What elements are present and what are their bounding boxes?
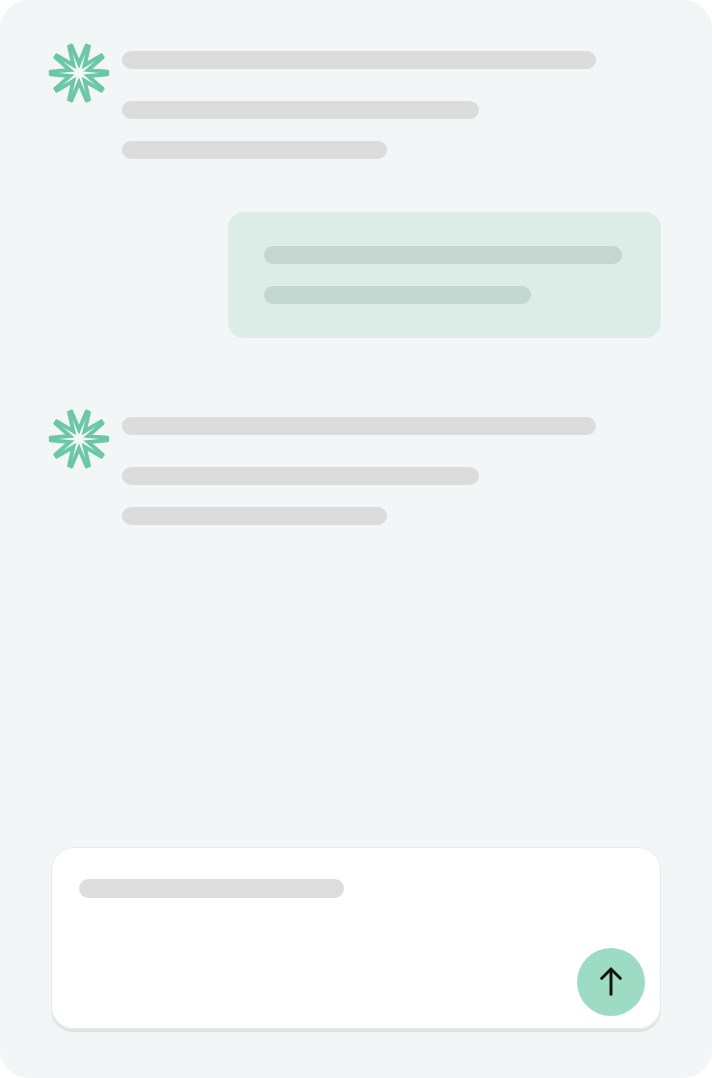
button[interactable]	[228, 212, 661, 338]
button[interactable]	[48, 42, 596, 150]
button[interactable]: Send message	[577, 948, 645, 1016]
button[interactable]	[48, 408, 596, 516]
button[interactable]: Send message	[51, 847, 661, 1029]
